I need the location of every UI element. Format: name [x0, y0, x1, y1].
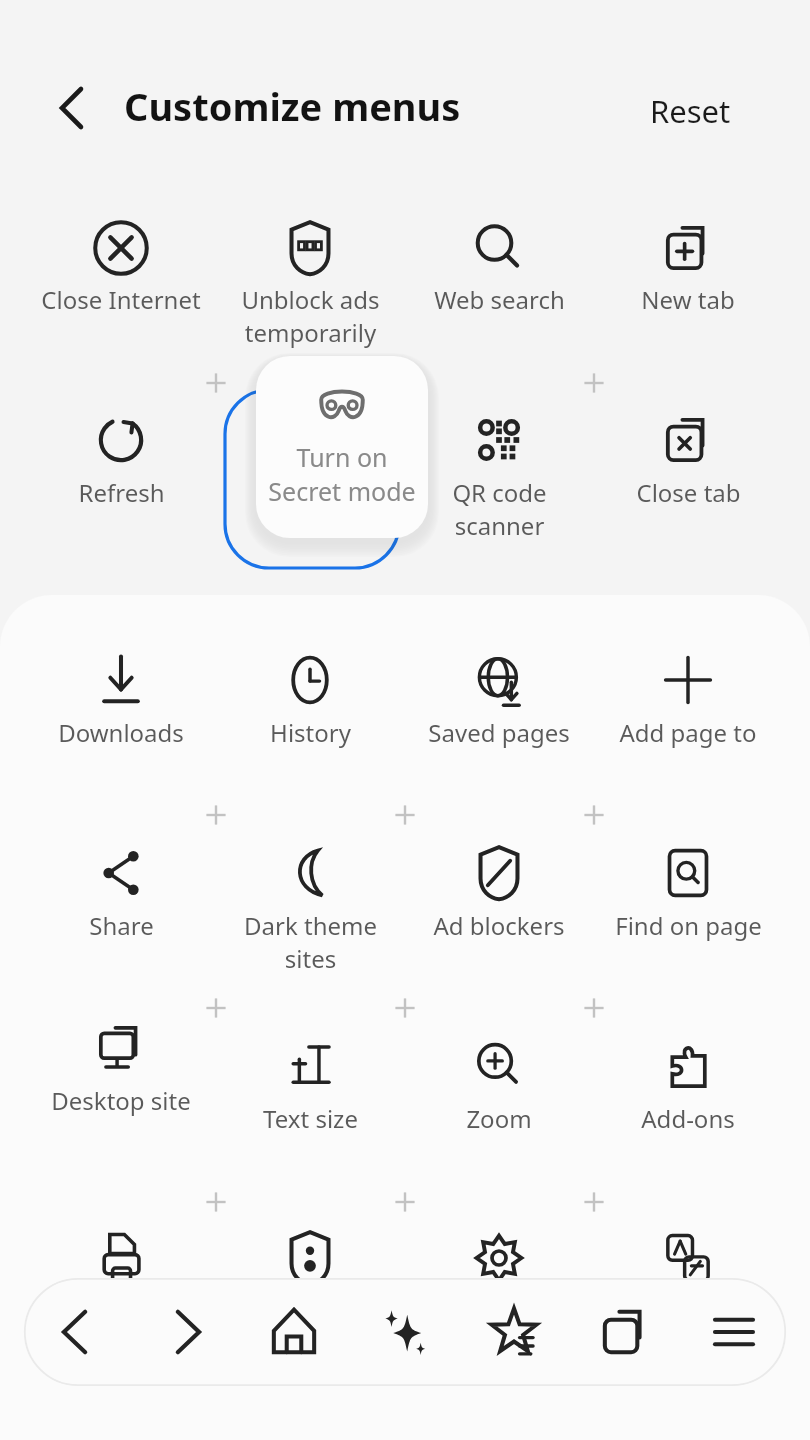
button[interactable] [595, 392, 781, 542]
button[interactable] [595, 825, 781, 975]
staticText: Downloads [58, 716, 184, 749]
staticText: QR code scanner [452, 476, 547, 542]
staticText: Saved pages [428, 716, 570, 749]
button[interactable]: Back [40, 76, 104, 140]
button[interactable] [217, 200, 403, 350]
button[interactable] [28, 1000, 214, 1150]
button[interactable] [595, 200, 781, 350]
button[interactable] [406, 392, 592, 542]
staticText: Reset [650, 90, 731, 132]
button[interactable] [595, 632, 781, 782]
staticText: Find on page [615, 909, 762, 942]
button[interactable] [406, 825, 592, 975]
staticText: Share [89, 909, 154, 942]
button[interactable]: Forward [145, 1288, 233, 1376]
button[interactable] [217, 632, 403, 782]
button[interactable] [28, 200, 214, 350]
button[interactable] [217, 1018, 403, 1168]
button[interactable]: Menu [690, 1288, 778, 1376]
button[interactable]: Reset [650, 90, 731, 132]
staticText: History [270, 716, 351, 749]
button[interactable] [406, 632, 592, 782]
staticText: New tab [641, 283, 735, 316]
button[interactable] [595, 1018, 781, 1168]
button[interactable]: Customize menus [124, 80, 461, 132]
staticText: Zoom [466, 1102, 532, 1135]
button[interactable] [28, 632, 214, 782]
button[interactable]: Home [250, 1288, 338, 1376]
button[interactable]: Tabs [581, 1288, 669, 1376]
staticText: Dark theme sites [244, 909, 377, 975]
staticText: Ad blockers [433, 909, 565, 942]
button[interactable]: Back [30, 1288, 118, 1376]
staticText: Add page to [619, 716, 757, 749]
button[interactable]: AI assistant [361, 1288, 449, 1376]
button[interactable]: Bookmarks [470, 1288, 558, 1376]
staticText: Turn on Secret mode [268, 440, 416, 509]
button[interactable] [406, 1018, 592, 1168]
button[interactable] [406, 200, 592, 350]
staticText: Desktop site [51, 1084, 191, 1117]
staticText: Web search [434, 283, 565, 316]
staticText: Close Internet [41, 283, 201, 316]
button[interactable] [217, 825, 403, 975]
staticText: Text size [263, 1102, 358, 1135]
staticText: Close tab [636, 476, 741, 509]
button[interactable] [28, 392, 214, 542]
staticText: Unblock ads temporarily [241, 283, 380, 349]
button[interactable] [256, 356, 428, 538]
staticText: Refresh [78, 476, 165, 509]
staticText: Add-ons [641, 1102, 735, 1135]
staticText: Customize menus [124, 80, 461, 132]
button[interactable] [28, 825, 214, 975]
